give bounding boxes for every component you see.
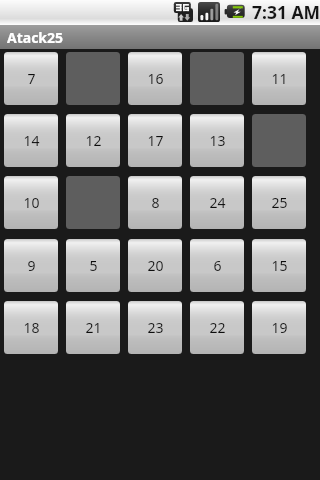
staticText: 7 xyxy=(27,69,36,88)
button[interactable]: 14 xyxy=(4,114,58,167)
staticText: 12 xyxy=(85,131,102,150)
staticText: 9 xyxy=(27,256,36,275)
button[interactable]: 22 xyxy=(190,301,244,354)
staticText: 16 xyxy=(147,69,164,88)
button[interactable]: 20 xyxy=(128,239,182,292)
button[interactable]: 21 xyxy=(66,301,120,354)
button[interactable]: Empty square xyxy=(66,176,120,229)
staticText: 23 xyxy=(147,318,164,337)
staticText: 20 xyxy=(147,256,164,275)
button[interactable]: 19 xyxy=(252,301,306,354)
staticText: 25 xyxy=(271,193,288,212)
staticText: 15 xyxy=(271,256,288,275)
staticText: 19 xyxy=(271,318,288,337)
button[interactable]: 24 xyxy=(190,176,244,229)
button[interactable]: 23 xyxy=(128,301,182,354)
button[interactable]: 11 xyxy=(252,52,306,105)
button[interactable]: 6 xyxy=(190,239,244,292)
button[interactable]: 10 xyxy=(4,176,58,229)
staticText: 8 xyxy=(151,193,160,212)
staticText: 24 xyxy=(209,193,226,212)
staticText: 10 xyxy=(23,193,40,212)
button[interactable]: 9 xyxy=(4,239,58,292)
button[interactable]: Empty square xyxy=(190,52,244,105)
staticText: 21 xyxy=(85,318,102,337)
staticText: 6 xyxy=(213,256,222,275)
button[interactable]: 7 xyxy=(4,52,58,105)
staticText: 22 xyxy=(209,318,226,337)
button[interactable]: 5 xyxy=(66,239,120,292)
button[interactable]: 13 xyxy=(190,114,244,167)
button[interactable]: 15 xyxy=(252,239,306,292)
staticText: 18 xyxy=(23,318,40,337)
button[interactable]: Empty square xyxy=(252,114,306,167)
staticText: 14 xyxy=(23,131,40,150)
staticText: Atack25 xyxy=(7,28,64,47)
staticText: 17 xyxy=(147,131,164,150)
staticText: 13 xyxy=(209,131,226,150)
button[interactable]: 18 xyxy=(4,301,58,354)
button[interactable]: 16 xyxy=(128,52,182,105)
staticText: 5 xyxy=(89,256,98,275)
button[interactable]: 12 xyxy=(66,114,120,167)
staticText: 11 xyxy=(271,69,288,88)
button[interactable]: Empty square xyxy=(66,52,120,105)
button[interactable]: 17 xyxy=(128,114,182,167)
button[interactable]: 25 xyxy=(252,176,306,229)
staticText: 7:31 AM xyxy=(252,0,320,24)
button[interactable]: 8 xyxy=(128,176,182,229)
